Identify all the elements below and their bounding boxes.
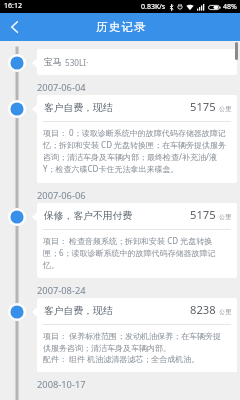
staticText: 项目： 保养标准范围；发动机油保养；在车辆旁提供服务咨询；清洁车身及车辆内部。 [43,330,228,353]
staticText: 530LI· [65,57,89,68]
staticText: 历史记录 [96,20,147,34]
staticText: 项目： 0；读取诊断系统中的故障代码存储器故障记忆；拆卸和安装 CD 光盘转换匣… [43,127,228,175]
staticText: 公里 [219,105,231,113]
staticText: 5175 [190,207,216,222]
button[interactable]: 保修，客户不用付费 [37,203,237,278]
staticText: 宝马 [44,57,62,68]
staticText: 客户自费，现结 [44,102,113,114]
staticText: 配件： 组件 机油滤清器滤芯；全合成机油。 [43,353,200,364]
staticText: 0.83K/s [141,2,166,12]
staticText: 48% [223,2,237,12]
staticText: 保修，客户不用付费 [44,210,133,222]
button[interactable]: 宝马 [37,49,237,75]
staticText: 2007-08-24 [37,284,86,297]
staticText: 8238 [190,302,216,317]
staticText: 公里 [219,213,231,221]
staticText: 16:12 [4,1,22,11]
button[interactable]: 客户自费，现结 [37,298,237,372]
staticText: 2007-06-04 [37,81,86,94]
staticText: 客户自费，现结 [44,305,113,317]
staticText: 项目： 检查音频系统；拆卸和安装 CD 光盘转换匣；6；读取诊断系统中的故障代码… [43,235,228,270]
button[interactable]: Back [0,13,28,41]
staticText: 2008-10-17 [37,378,86,391]
button[interactable]: 客户自费，现结 [37,95,237,183]
staticText: 2007-06-06 [37,189,86,202]
staticText: 公里 [219,308,231,316]
staticText: 5175 [190,99,216,114]
